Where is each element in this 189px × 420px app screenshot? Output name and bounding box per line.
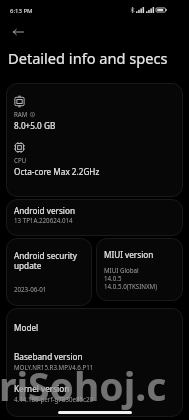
staticText: RAM	[14, 110, 28, 118]
staticText: MIUI Global	[104, 266, 139, 274]
button[interactable]: Android version	[6, 199, 183, 236]
button[interactable]: RAM	[6, 83, 183, 197]
staticText: 4.14.186-perf-g7830e85c20	[14, 395, 94, 403]
staticText: CPU	[14, 156, 27, 164]
button[interactable]: Model	[6, 308, 183, 417]
staticText: 2023-06-01	[14, 285, 47, 293]
staticText: MIUI version	[104, 249, 154, 260]
staticText: Octa-core Max 2.2GHz	[14, 166, 100, 177]
button[interactable]: Android security update	[6, 238, 92, 306]
staticText: riSohoj.c	[0, 359, 167, 412]
staticText: 13 TP1A.220624.014	[14, 216, 73, 224]
staticText: Model	[14, 322, 39, 333]
staticText: 6:13 PM	[10, 7, 33, 15]
staticText: 14.0.5	[104, 274, 122, 282]
staticText: MOLY.NR15.R3.MP.V4.6.P11	[14, 363, 94, 371]
staticText: Kernel version	[14, 383, 70, 394]
staticText: Android security update	[14, 250, 77, 272]
button[interactable]: MIUI version	[96, 238, 183, 301]
staticText: Baseband version	[14, 351, 83, 362]
staticText: Android version	[14, 205, 75, 216]
button[interactable]: Back	[9, 24, 27, 40]
staticText: 14.0.5.0(TKSINXM)	[104, 282, 158, 290]
staticText: Detailed info and specs	[8, 48, 168, 68]
staticText: 8.0+5.0 GB	[14, 120, 56, 131]
